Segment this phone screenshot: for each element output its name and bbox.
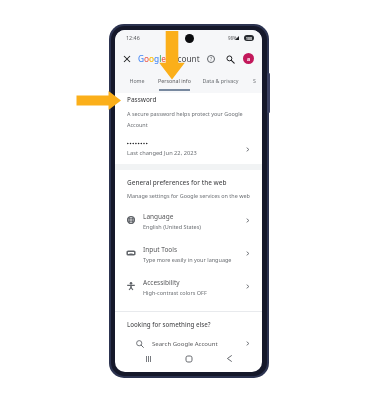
staticText: Last changed Jun 22, 2023	[127, 149, 197, 157]
button[interactable]: Accessibility	[115, 274, 262, 298]
button[interactable]: Account avatar	[243, 53, 254, 64]
staticText: Search Google Account	[152, 340, 218, 348]
staticText: a	[247, 55, 251, 62]
button[interactable]: Recent apps	[141, 351, 156, 366]
staticText: Data & privacy	[202, 77, 239, 84]
staticText: General preferences for the web	[127, 178, 227, 187]
staticText: Manage settings for Google services on t…	[127, 192, 250, 199]
staticText: S	[253, 77, 256, 84]
button[interactable]: Search Google Account	[115, 335, 262, 352]
button[interactable]: Data & privacy	[201, 73, 239, 93]
staticText: 12:46	[126, 34, 140, 41]
staticText: High-contrast colors OFF	[143, 289, 207, 296]
staticText: Language	[143, 212, 174, 221]
staticText: Home	[129, 77, 145, 84]
staticText: ?	[210, 56, 213, 63]
staticText: Type more easily in your language	[143, 256, 232, 263]
button[interactable]: Back	[222, 351, 237, 366]
staticText: Google Account	[138, 53, 200, 64]
button[interactable]: Personal info	[155, 73, 193, 93]
button[interactable]: Language	[115, 208, 262, 232]
staticText: Looking for something else?	[127, 320, 211, 328]
staticText: English (United States)	[143, 223, 201, 230]
button[interactable]: Search	[223, 52, 237, 66]
staticText: Accessibility	[143, 278, 180, 287]
staticText: 100	[246, 36, 252, 41]
button[interactable]: S	[235, 73, 262, 93]
button[interactable]: Help	[204, 52, 218, 66]
button[interactable]: Home	[181, 351, 196, 366]
staticText: Password	[127, 95, 157, 104]
staticText: Personal info	[158, 77, 191, 84]
button[interactable]: Home	[118, 73, 156, 93]
staticText: Input Tools	[143, 245, 178, 254]
button[interactable]: Close	[119, 51, 135, 67]
button[interactable]: Input Tools	[115, 241, 262, 265]
staticText: A secure password helps protect your Goo…	[127, 110, 245, 128]
staticText: 98%	[228, 35, 237, 41]
button[interactable]: Last changed Jun 22, 2023	[115, 136, 262, 162]
